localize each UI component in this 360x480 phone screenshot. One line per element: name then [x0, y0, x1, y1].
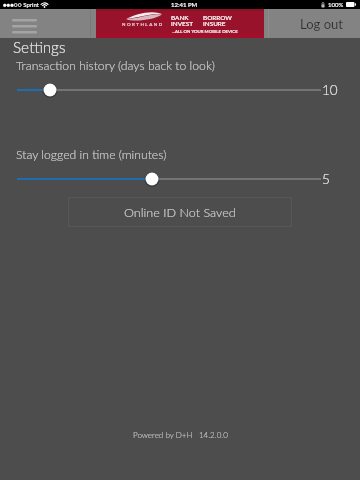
- staticText: BORROW: [203, 14, 232, 22]
- staticText: 100%: [328, 1, 344, 8]
- staticText: INVEST: [171, 20, 193, 28]
- staticText: Transaction history (days back to look): [16, 58, 215, 73]
- staticText: 12:41 PM: [171, 1, 198, 8]
- button[interactable]: Online ID Not Saved: [68, 197, 292, 227]
- staticText: BANK: [171, 14, 189, 22]
- staticText: Online ID Not Saved: [124, 205, 236, 220]
- staticText: Powered by D+H 14.2.0.0: [133, 430, 228, 440]
- button[interactable]: Log out: [269, 9, 360, 38]
- staticText: 10: [322, 82, 338, 98]
- staticText: Stay logged in time (minutes): [16, 147, 167, 162]
- staticText: ●●●○○ Sprint: [3, 1, 39, 8]
- staticText: Log out: [300, 16, 343, 32]
- staticText: FINANCIAL: [124, 26, 160, 31]
- button[interactable]: Menu: [0, 9, 48, 38]
- staticText: Settings: [13, 38, 66, 56]
- staticText: NORTHLAND: [122, 22, 164, 27]
- staticText: 5: [322, 171, 330, 187]
- staticText: INSURE: [203, 20, 226, 28]
- staticText: ...ALL ON YOUR MOBILE DEVICE: [172, 29, 238, 34]
